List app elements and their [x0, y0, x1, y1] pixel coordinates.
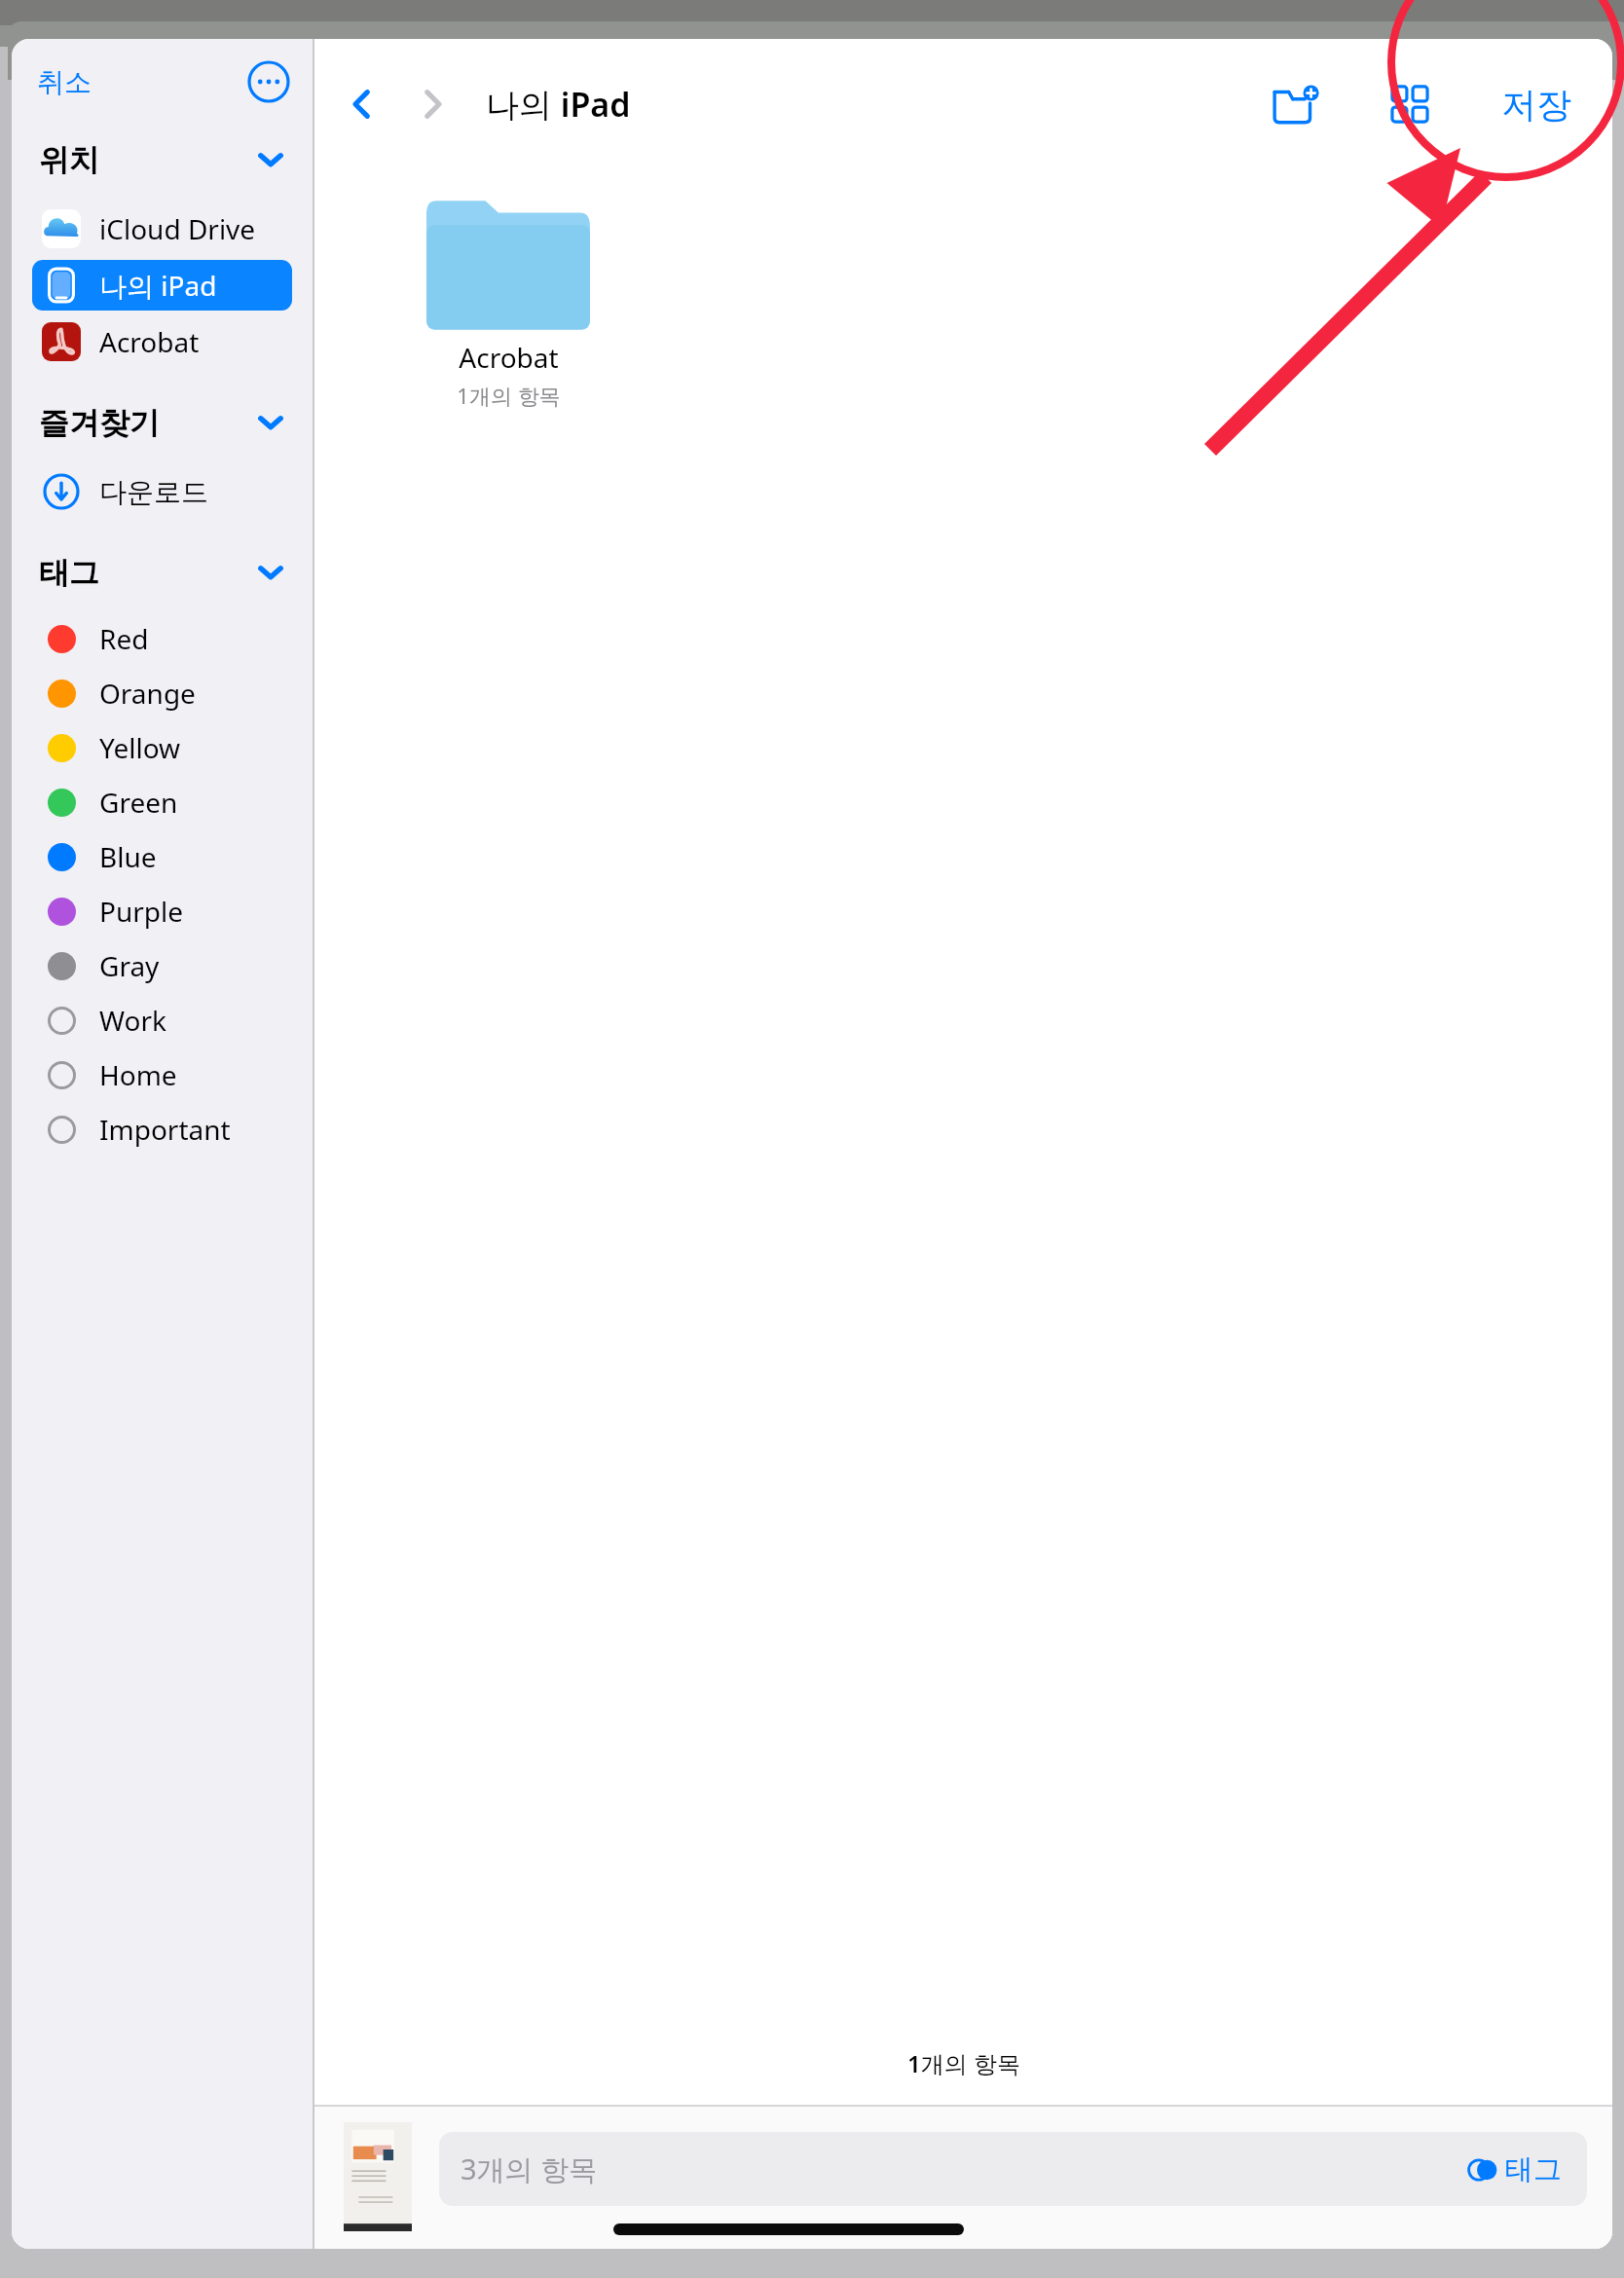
button[interactable]: 저장	[1492, 77, 1581, 132]
button[interactable]: 위치	[12, 132, 313, 187]
button[interactable]: Important	[32, 1102, 292, 1157]
staticText: 1개의 항목	[907, 2047, 1020, 2079]
button[interactable]: Green	[32, 775, 292, 829]
staticText: 취소	[37, 65, 92, 99]
button[interactable]: Acrobat	[396, 193, 620, 410]
button[interactable]: More options	[246, 59, 291, 104]
staticText: 1개의 항목	[457, 381, 561, 410]
staticText: Purple	[99, 893, 184, 930]
staticText: Acrobat	[99, 323, 200, 360]
button[interactable]: 나의 iPad	[32, 260, 292, 311]
staticText: 다운로드	[99, 475, 208, 509]
button[interactable]: Gray	[32, 938, 292, 993]
staticText: Gray	[99, 947, 160, 984]
button[interactable]: iCloud Drive	[32, 203, 292, 254]
staticText: 태그	[1505, 2151, 1562, 2187]
button[interactable]: Acrobat	[32, 316, 292, 367]
staticText: Work	[99, 1002, 166, 1039]
button[interactable]: Forward	[402, 74, 462, 134]
staticText: 태그	[39, 554, 99, 592]
staticText: Yellow	[99, 729, 181, 766]
staticText: Important	[99, 1111, 231, 1148]
staticText: Red	[99, 620, 149, 657]
button[interactable]: 취소	[27, 59, 101, 105]
button[interactable]: Home	[32, 1047, 292, 1102]
button[interactable]: 3개의 항목	[439, 2132, 1587, 2206]
staticText: iCloud Drive	[99, 210, 256, 247]
staticText: 나의 iPad	[99, 267, 217, 304]
button[interactable]: Blue	[32, 829, 292, 884]
button[interactable]: 태그	[12, 545, 313, 600]
staticText: 3개의 항목	[461, 2149, 598, 2188]
button[interactable]: New Folder	[1262, 69, 1332, 139]
staticText: 즐겨찾기	[39, 404, 160, 442]
button[interactable]: Back	[332, 74, 392, 134]
staticText: 위치	[39, 141, 99, 179]
button[interactable]: 다운로드	[32, 466, 292, 517]
button[interactable]: Purple	[32, 884, 292, 938]
staticText: Blue	[99, 838, 157, 875]
button[interactable]: Orange	[32, 666, 292, 720]
staticText: Green	[99, 784, 178, 821]
button[interactable]: 태그	[1464, 2149, 1566, 2189]
button[interactable]: 즐겨찾기	[12, 395, 313, 450]
staticText: Orange	[99, 675, 196, 712]
staticText: 나의 iPad	[486, 82, 631, 127]
staticText: Home	[99, 1056, 177, 1093]
staticText: 저장	[1501, 83, 1571, 127]
button[interactable]: Work	[32, 993, 292, 1047]
button[interactable]: Yellow	[32, 720, 292, 775]
button[interactable]: Grid view	[1375, 69, 1445, 139]
button[interactable]: Red	[32, 611, 292, 666]
staticText: Acrobat	[459, 339, 559, 376]
